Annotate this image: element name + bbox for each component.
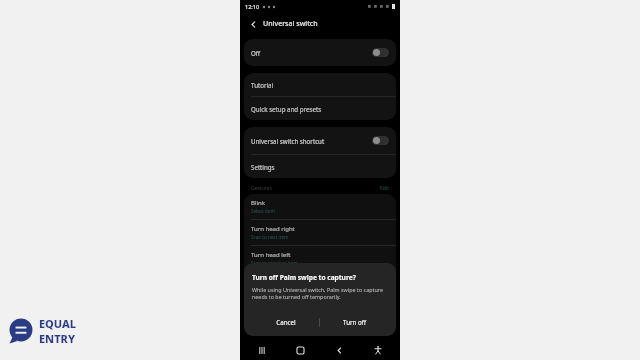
staticText: Quick setup and presets xyxy=(251,105,322,113)
staticText: EQUAL xyxy=(39,316,77,331)
button[interactable]: Back xyxy=(246,17,260,31)
button[interactable]: Accessibility xyxy=(370,342,386,358)
staticText: Scan to previous item xyxy=(251,260,298,266)
button[interactable]: Recents xyxy=(254,342,270,358)
staticText: Settings xyxy=(251,163,275,171)
button[interactable]: Blink xyxy=(244,194,396,219)
staticText: ENTRY xyxy=(39,331,75,346)
button[interactable]: Home xyxy=(292,342,308,358)
button[interactable]: Settings xyxy=(244,155,396,178)
staticText: Turn off xyxy=(343,318,366,326)
staticText: Open mouth xyxy=(251,281,287,289)
staticText: 12:10 xyxy=(245,3,260,10)
button[interactable]: Toggle Universal switch shortcut xyxy=(372,136,389,145)
button[interactable]: Toggle Off xyxy=(372,48,389,57)
staticText: Cancel xyxy=(276,318,296,326)
staticText: Tutorial xyxy=(251,81,274,89)
button[interactable]: Quick setup and presets xyxy=(244,97,396,120)
staticText: Edit xyxy=(380,185,389,192)
button[interactable]: Cancel xyxy=(252,312,319,332)
staticText: Off xyxy=(251,49,261,57)
staticText: While using Universal switch, Palm swipe… xyxy=(252,286,388,301)
button[interactable]: Back xyxy=(331,342,347,358)
button[interactable]: Turn off xyxy=(320,312,388,332)
button[interactable]: Turn head right xyxy=(244,220,396,245)
staticText: Scan to next item xyxy=(251,234,289,240)
button[interactable]: Turn head left xyxy=(244,246,396,271)
staticText: Gestures xyxy=(251,185,272,192)
staticText: Blink xyxy=(251,199,265,207)
button[interactable]: Tutorial xyxy=(244,73,396,96)
staticText: Universal switch xyxy=(263,19,318,29)
button[interactable]: Open mouth xyxy=(244,272,396,297)
button[interactable]: Off xyxy=(244,39,396,66)
staticText: Select item xyxy=(251,208,275,214)
staticText: Universal switch shortcut xyxy=(251,137,325,145)
staticText: Turn head right xyxy=(251,225,295,233)
staticText: Turn head left xyxy=(251,251,291,259)
button[interactable]: Edit xyxy=(380,185,389,192)
button[interactable]: Universal switch shortcut xyxy=(244,127,396,154)
staticText: Turn off Palm swipe to capture? xyxy=(252,273,356,282)
